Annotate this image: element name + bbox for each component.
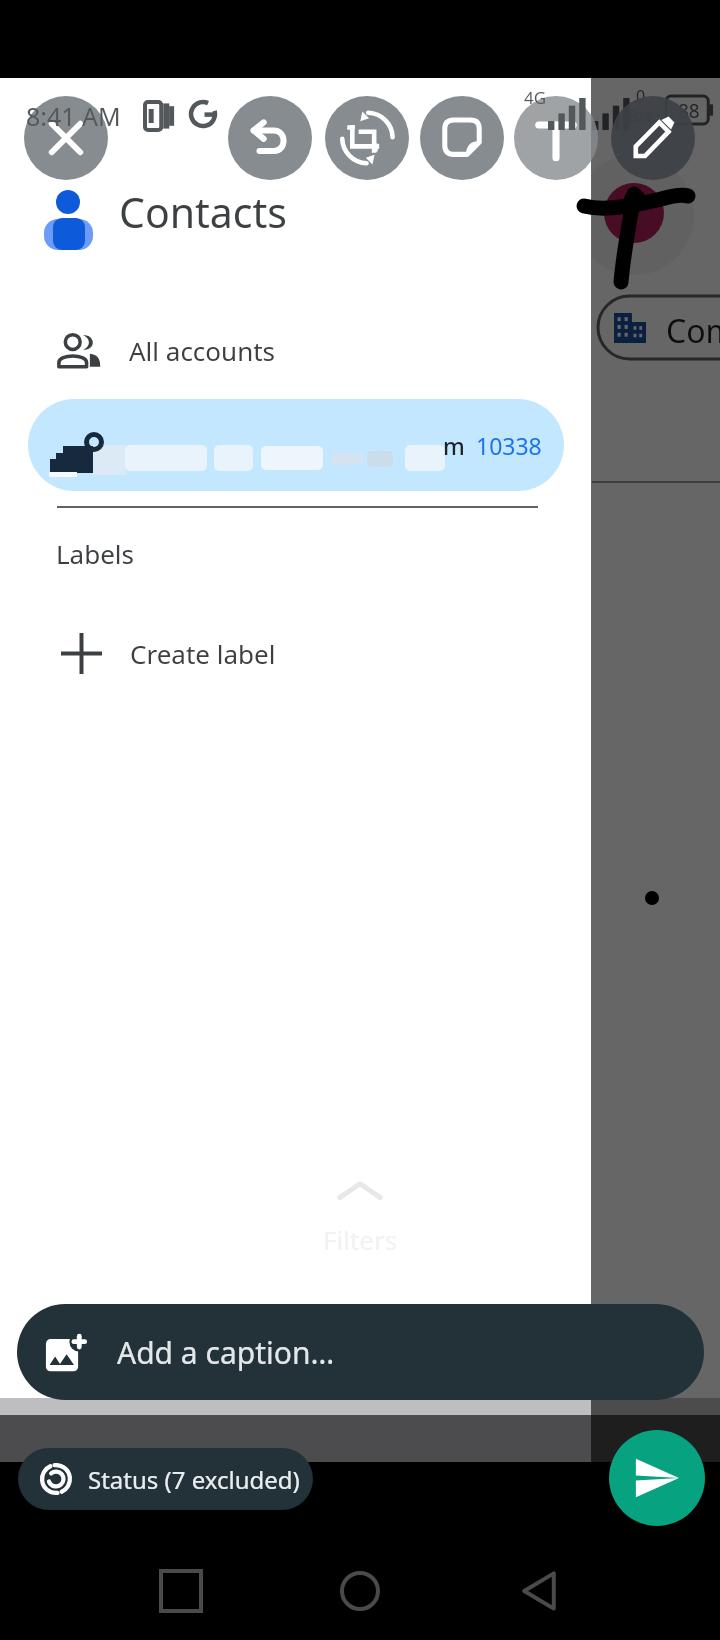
- button[interactable]: m: [28, 399, 564, 491]
- button[interactable]: Status (7 excluded): [18, 1448, 313, 1510]
- staticText: 88: [678, 98, 700, 124]
- staticText: Create label: [130, 636, 276, 671]
- button[interactable]: Draw: [611, 96, 695, 180]
- button[interactable]: Create label: [0, 608, 720, 698]
- staticText: Comp: [666, 309, 720, 353]
- button[interactable]: Add text: [514, 96, 598, 180]
- button[interactable]: Crop and rotate: [325, 96, 409, 180]
- staticText: Status (7 excluded): [88, 1463, 300, 1496]
- staticText: 4G: [524, 86, 547, 109]
- button[interactable]: All accounts: [0, 304, 720, 396]
- button[interactable]: Close: [24, 96, 108, 180]
- staticText: All accounts: [129, 333, 276, 368]
- staticText: Contacts: [119, 184, 287, 240]
- staticText: 0: [636, 85, 646, 107]
- button[interactable]: Add a caption…: [17, 1304, 704, 1400]
- button[interactable]: Add sticker: [420, 96, 504, 180]
- staticText: B/s: [628, 105, 653, 127]
- staticText: m: [443, 430, 465, 461]
- staticText: 8:41 AM: [26, 99, 121, 133]
- staticText: Labels: [56, 536, 135, 571]
- button[interactable]: Send: [609, 1430, 705, 1526]
- staticText: Filters: [323, 1222, 398, 1257]
- staticText: Add a caption…: [117, 1332, 335, 1373]
- staticText: 10338: [476, 430, 542, 461]
- button[interactable]: Undo: [228, 96, 312, 180]
